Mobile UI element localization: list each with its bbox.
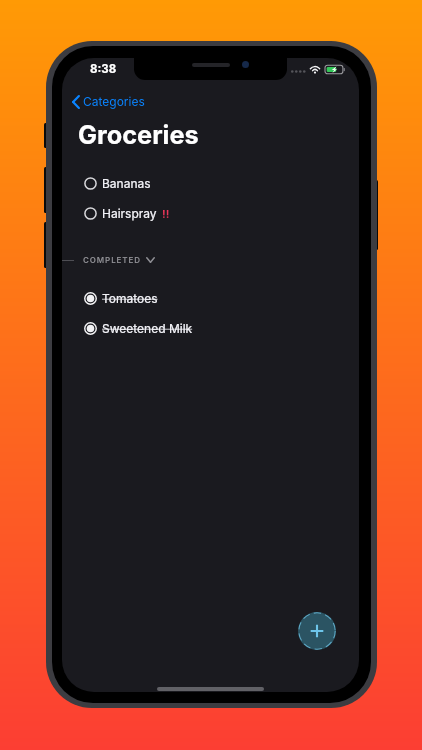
staticText: !! (162, 207, 170, 220)
staticText: 8:38 (90, 62, 117, 76)
button[interactable]: Sweetened Milk (62, 313, 359, 343)
button[interactable]: Add item (298, 612, 336, 650)
staticText: COMPLETED (83, 255, 141, 265)
staticText: Groceries (78, 119, 199, 150)
button[interactable]: COMPLETED (62, 253, 359, 267)
staticText: Categories (83, 94, 145, 109)
staticText: Sweetened Milk (102, 321, 193, 336)
staticText: Hairspray (102, 206, 157, 221)
staticText: Bananas (102, 176, 151, 191)
button[interactable]: Categories (71, 92, 149, 111)
button[interactable]: Bananas (62, 168, 359, 198)
button[interactable]: Hairspray (62, 198, 359, 228)
staticText: Tomatoes (102, 291, 158, 306)
button[interactable]: Tomatoes (62, 283, 359, 313)
